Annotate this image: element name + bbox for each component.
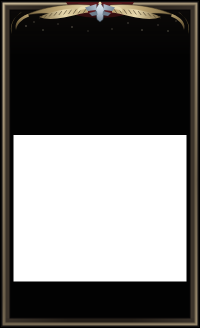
button[interactable]: Ornate framed panel — [0, 0, 200, 328]
